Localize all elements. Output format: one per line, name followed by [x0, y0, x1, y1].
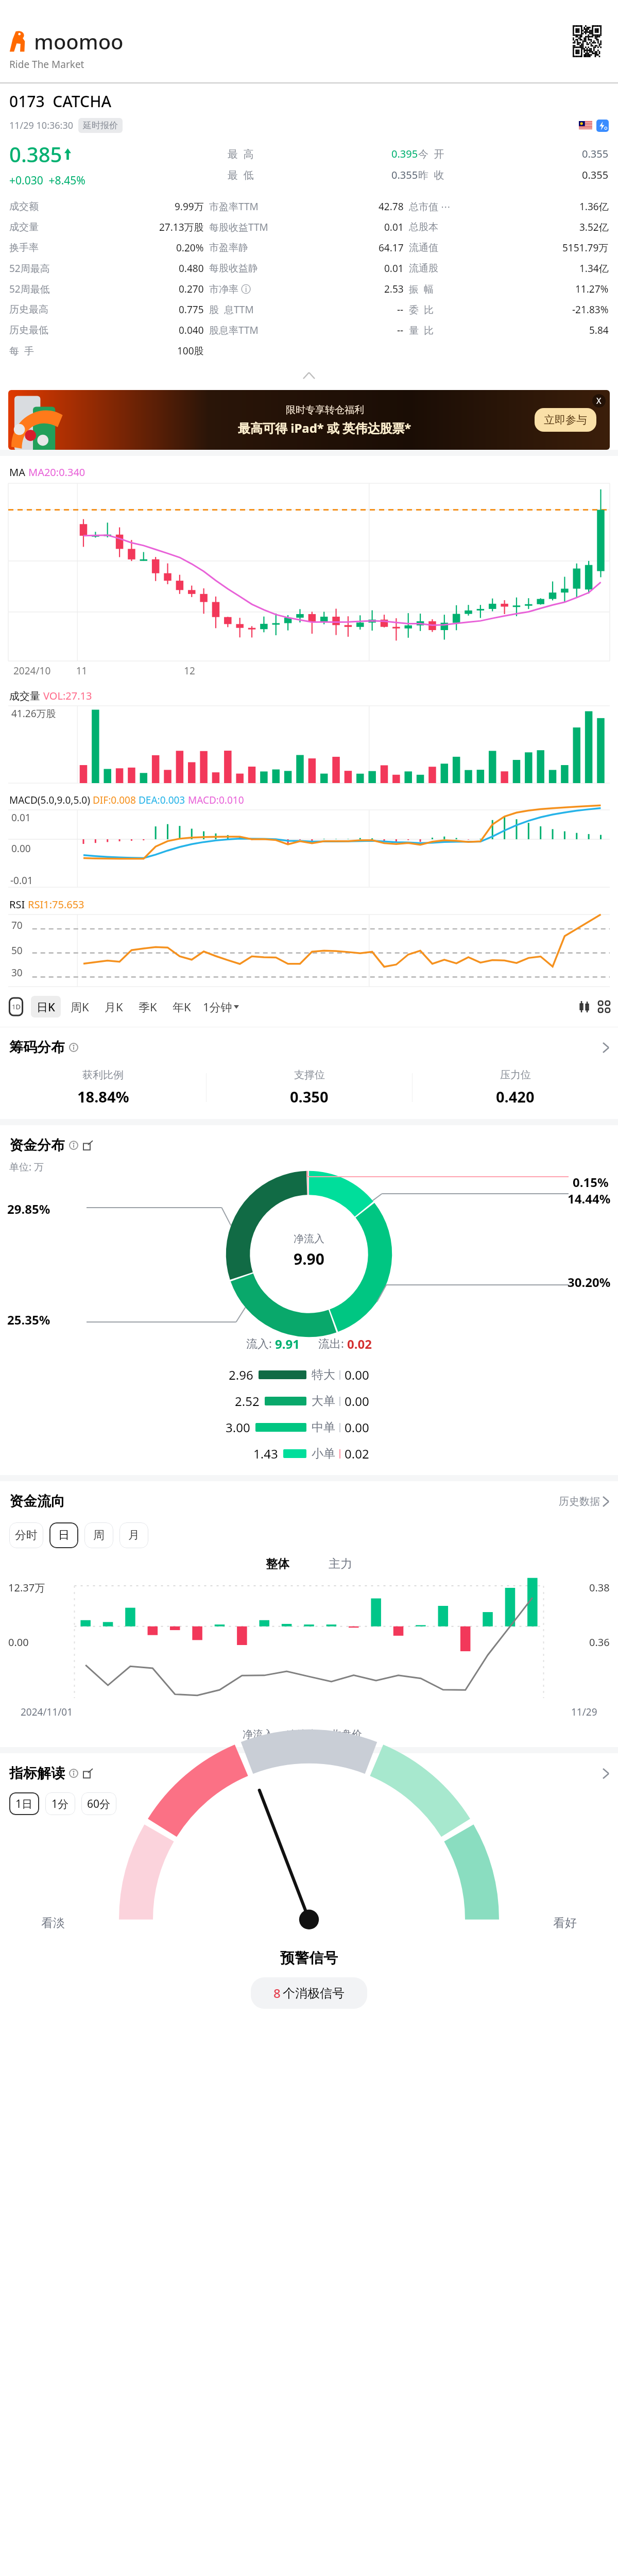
staticText: -- [397, 324, 404, 337]
button[interactable]: 1分钟 [201, 999, 241, 1014]
button[interactable]: 1分 [45, 1792, 75, 1815]
button[interactable]: 限时专享转仓福利 [8, 390, 610, 450]
staticText: 流通股 [409, 262, 438, 275]
button[interactable]: 年K [167, 996, 197, 1018]
staticText: 2.96 [229, 1366, 253, 1383]
staticText: 0.040 [179, 324, 204, 337]
staticText: DEA:0.003 [139, 793, 188, 807]
button[interactable]: 1日 [9, 1792, 39, 1815]
staticText: 0.00 [345, 1393, 369, 1410]
button[interactable]: 月K [99, 996, 129, 1018]
staticText: 42.78 [379, 200, 404, 213]
button[interactable]: 筹码分布 [0, 1027, 618, 1059]
staticText: 指标解读 [9, 1765, 65, 1782]
button[interactable]: 60分 [81, 1792, 116, 1815]
staticText: 0.38 [589, 1581, 610, 1595]
staticText: 1日 [15, 1797, 33, 1811]
staticText: 历史最高 [9, 303, 48, 316]
staticText: 每 手 [9, 344, 34, 358]
staticText: 单位: 万 [9, 1160, 44, 1174]
staticText: 1.34亿 [579, 262, 609, 275]
staticText: 0.775 [179, 303, 204, 316]
staticText: 30.20% [568, 1274, 611, 1291]
staticText: 获利比例 [82, 1069, 124, 1081]
staticText: 1分 [51, 1797, 69, 1811]
staticText: 资金流向 [9, 1493, 65, 1510]
staticText: 2.52 [235, 1393, 260, 1410]
button[interactable]: 资金流向 [0, 1481, 618, 1513]
button[interactable]: 8 [251, 1977, 367, 2009]
staticText: 量 比 [409, 324, 434, 337]
staticText: 41.26万股 [11, 707, 56, 720]
staticText: 股息率TTM [209, 324, 259, 337]
button[interactable]: Close ad [592, 394, 606, 408]
staticText: 总市值 ⋯ [409, 200, 451, 213]
button[interactable]: 周K [65, 996, 95, 1018]
button[interactable]: Grid layout [598, 1001, 610, 1012]
staticText: -0.01 [10, 874, 33, 887]
staticText: 中单 [312, 1420, 335, 1435]
button[interactable]: 立即参与 [535, 408, 596, 432]
staticText: 8 [273, 1985, 281, 2002]
button[interactable]: 延时报价 [78, 118, 123, 133]
staticText: 压力位 [500, 1069, 531, 1081]
staticText: 股 息TTM [209, 303, 254, 316]
staticText: 0.355 [582, 168, 609, 182]
button[interactable]: 整体 [256, 1556, 299, 1571]
button[interactable]: 资金分布 [0, 1125, 618, 1157]
staticText: 特大 [312, 1367, 335, 1382]
staticText: 50 [11, 944, 23, 957]
staticText: 3.52亿 [579, 221, 609, 234]
staticText: 18.84% [77, 1087, 129, 1107]
staticText: 年K [173, 999, 191, 1014]
button[interactable]: 1 Day [8, 998, 24, 1015]
staticText: 流入: [246, 1335, 275, 1351]
staticText: 主力 [329, 1556, 352, 1571]
staticText: 0.36 [589, 1635, 610, 1649]
button[interactable]: Share [83, 1141, 93, 1150]
button[interactable]: 日 [49, 1522, 78, 1548]
button[interactable]: Candle style [579, 1001, 590, 1012]
staticText: 换手率 [9, 242, 39, 254]
staticText: 净流入 [243, 1728, 273, 1741]
staticText: 0.480 [179, 262, 204, 275]
button[interactable]: 周 [84, 1522, 113, 1548]
button[interactable]: Share [83, 1769, 93, 1778]
button[interactable]: 指标解读 [0, 1753, 618, 1785]
staticText: 5.84 [589, 324, 609, 337]
button[interactable]: 日K [31, 996, 61, 1018]
staticText: 委 比 [409, 303, 434, 316]
staticText: 延时报价 [83, 120, 118, 131]
staticText: MA [9, 465, 28, 479]
staticText: 25.35% [7, 1311, 50, 1328]
staticText: 周 [93, 1528, 105, 1543]
staticText: 70 [11, 919, 23, 932]
staticText: 每股收益静 [209, 262, 258, 275]
staticText: 历史最低 [9, 324, 48, 336]
staticText: 总股本 [409, 221, 438, 233]
staticText: 1D [12, 1002, 21, 1011]
staticText: 分时 [15, 1528, 38, 1543]
staticText: 0.20% [176, 241, 204, 255]
button[interactable]: 主力 [319, 1556, 362, 1571]
staticText: 0173 CATCHA [9, 91, 112, 112]
staticText: 9.91 [275, 1335, 300, 1352]
button[interactable]: Lightning quote [596, 120, 609, 132]
staticText: RSI1:75.653 [28, 897, 84, 911]
staticText: MACD:0.010 [188, 793, 244, 807]
staticText: Ride The Market [9, 58, 84, 71]
button[interactable]: 季K [133, 996, 163, 1018]
staticText: 限时专享转仓福利 [286, 404, 364, 416]
staticText: VOL:27.13 [43, 689, 92, 703]
staticText: 净流入 [294, 1232, 324, 1245]
staticText: 预警信号 [0, 1949, 618, 1967]
staticText: 1分钟 [203, 999, 232, 1014]
staticText: 振 幅 [409, 282, 434, 296]
staticText: 1.36亿 [579, 200, 609, 213]
button[interactable]: 月 [119, 1522, 148, 1548]
staticText: 0.00 [8, 1635, 29, 1649]
button[interactable]: 分时 [9, 1522, 43, 1548]
staticText: RSI [9, 897, 28, 911]
staticText: -21.83% [572, 303, 609, 316]
